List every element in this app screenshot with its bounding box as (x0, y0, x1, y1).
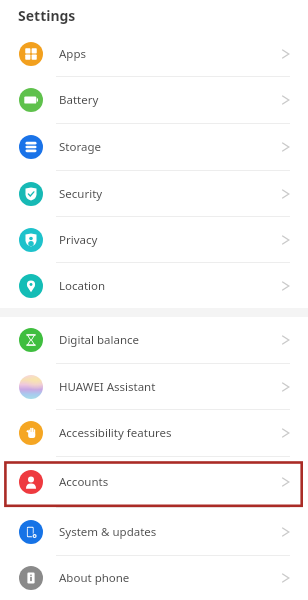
button[interactable]: Digital balance (0, 317, 308, 363)
button[interactable]: Accessibility features (0, 410, 308, 456)
staticText: Security (59, 186, 103, 202)
button[interactable]: Location (0, 263, 308, 308)
staticText: Settings (18, 6, 76, 25)
button[interactable]: Apps (0, 31, 308, 76)
button[interactable]: About phone (0, 556, 308, 600)
staticText: Storage (59, 139, 101, 155)
staticText: Privacy (59, 232, 98, 248)
staticText: Apps (59, 46, 87, 62)
staticText: Digital balance (59, 332, 140, 348)
staticText: About phone (59, 570, 130, 586)
button[interactable]: System & updates (0, 508, 308, 555)
staticText: System & updates (59, 524, 157, 540)
button[interactable]: HUAWEI Assistant (0, 364, 308, 409)
staticText: Location (59, 278, 106, 294)
staticText: Battery (59, 92, 99, 108)
button[interactable]: Storage (0, 124, 308, 170)
button[interactable]: Battery (0, 77, 308, 123)
staticText: Accessibility features (59, 425, 172, 441)
button[interactable]: Privacy (0, 217, 308, 262)
staticText: Accounts (59, 474, 109, 490)
staticText: HUAWEI Assistant (59, 379, 156, 395)
button[interactable]: Accounts (0, 457, 308, 507)
button[interactable]: Security (0, 171, 308, 216)
